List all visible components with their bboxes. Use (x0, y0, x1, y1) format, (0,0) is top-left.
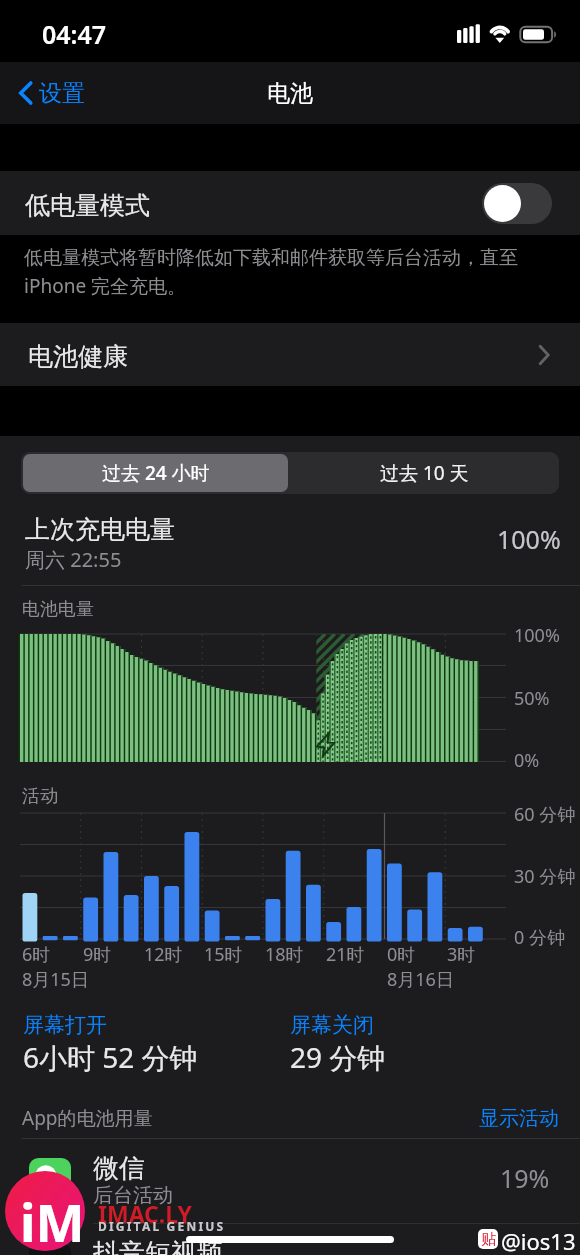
button[interactable]: Low Power Mode toggle (482, 183, 552, 224)
button[interactable]: 显示活动 (479, 1106, 559, 1131)
staticText: 设置 (39, 79, 85, 108)
staticText: 电池 (267, 79, 313, 108)
staticText: 100% (497, 522, 561, 556)
staticText: DIGITAL GENIUS (98, 1218, 226, 1234)
staticText: 12% (500, 1246, 550, 1255)
staticText: 低电量模式 (25, 190, 150, 221)
staticText: 6小时 52 分钟 (23, 1038, 198, 1076)
staticText: 8月15日 (22, 967, 89, 992)
staticText: 12时 (144, 942, 183, 967)
button[interactable]: 微信 (0, 1139, 580, 1223)
staticText: 21时 (326, 942, 365, 967)
staticText: 低电量模式将暂时降低如下载和邮件获取等后台活动，直至 (24, 246, 518, 270)
staticText: 8月16日 (387, 967, 454, 992)
button[interactable]: 低电量模式 (0, 171, 580, 235)
staticText: 29 分钟 (290, 1038, 386, 1076)
button[interactable]: 过去 24 小时 (23, 454, 288, 492)
staticText: 15时 (204, 942, 243, 967)
staticText: 上次充电电量 (25, 514, 175, 545)
button[interactable]: 抖音短视频 (0, 1224, 580, 1255)
button[interactable]: 设置 (14, 62, 89, 124)
staticText: @ios13吧 (501, 1226, 580, 1255)
staticText: 04:47 (42, 17, 107, 51)
staticText: 30 分钟 (514, 864, 576, 889)
staticText: 0% (514, 748, 540, 773)
staticText: IMAC.LY (98, 1198, 192, 1229)
staticText: 屏幕关闭 (290, 1012, 374, 1038)
staticText: 过去 10 天 (380, 460, 469, 486)
staticText: 过去 24 小时 (102, 460, 210, 486)
staticText: 100% (514, 623, 560, 648)
staticText: 0 分钟 (514, 925, 565, 950)
button[interactable]: 电池健康 (0, 323, 580, 386)
staticText: 电池电量 (22, 598, 94, 621)
staticText: 周六 22:55 (25, 546, 122, 573)
staticText: 电池健康 (28, 341, 128, 372)
staticText: 18时 (265, 942, 304, 967)
staticText: 9时 (83, 942, 112, 967)
staticText: 0时 (387, 942, 416, 967)
staticText: 微信 (93, 1152, 145, 1185)
staticText: 抖音短视频 (93, 1237, 223, 1255)
staticText: 屏幕打开 (23, 1012, 107, 1038)
staticText: iM (20, 1186, 85, 1255)
button[interactable]: 过去 10 天 (290, 452, 559, 494)
staticText: 活动 (22, 785, 58, 808)
staticText: 50% (514, 686, 550, 711)
staticText: 3时 (447, 942, 476, 967)
staticText: App的电池用量 (22, 1105, 501, 1131)
staticText: 60 分钟 (514, 802, 576, 827)
staticText: 后台活动 (93, 1183, 173, 1208)
staticText: iPhone 完全充电。 (24, 273, 187, 299)
staticText: 6时 (22, 942, 51, 967)
staticText: 19% (500, 1161, 550, 1195)
staticText: 贴 (481, 1230, 496, 1249)
